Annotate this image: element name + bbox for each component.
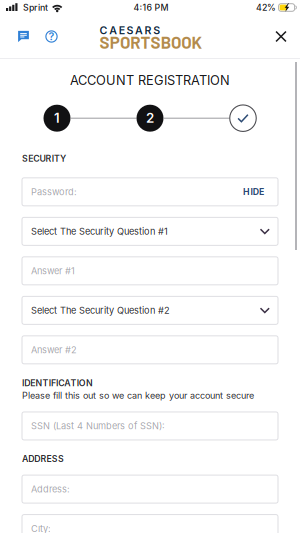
staticText: IDENTIFICATION xyxy=(22,378,93,388)
button[interactable]: Messages xyxy=(9,21,37,51)
staticText: 2 xyxy=(146,110,154,126)
button[interactable]: City: xyxy=(22,515,278,533)
staticText: City: xyxy=(31,523,51,533)
staticText: SSN (Last 4 Numbers of SSN): xyxy=(31,420,165,431)
staticText: Password: xyxy=(31,186,77,197)
staticText: 1 xyxy=(54,110,60,126)
staticText: Select The Security Question #1 xyxy=(31,226,168,237)
staticText: SECURITY xyxy=(22,153,66,164)
staticText: Address: xyxy=(31,483,70,495)
staticText: 4:16 PM xyxy=(133,2,168,13)
staticText: Sprint xyxy=(23,2,48,13)
button[interactable]: Close xyxy=(266,21,296,51)
staticText: ACCOUNT REGISTRATION xyxy=(70,73,230,88)
staticText: SPORTSBOOK xyxy=(100,32,202,52)
staticText: Please fill this out so we can keep your… xyxy=(22,390,254,401)
staticText: CAESARS xyxy=(100,24,160,37)
staticText: Answer #2 xyxy=(31,344,77,355)
staticText: 42% xyxy=(256,2,276,13)
button[interactable]: Select The Security Question #2 xyxy=(22,296,278,324)
staticText: ADDRESS xyxy=(22,453,64,464)
staticText: Select The Security Question #2 xyxy=(31,305,170,316)
button[interactable]: HIDE xyxy=(235,180,264,203)
button[interactable]: Help xyxy=(37,21,65,51)
button[interactable]: Answer #1 xyxy=(22,257,278,285)
button[interactable]: Select The Security Question #1 xyxy=(22,217,278,245)
button[interactable]: Address: xyxy=(22,475,278,503)
button[interactable]: SSN (Last 4 Numbers of SSN): xyxy=(22,412,278,440)
staticText: ? xyxy=(48,30,54,43)
staticText: Answer #1 xyxy=(31,265,75,276)
staticText: HIDE xyxy=(243,186,264,197)
button[interactable]: Answer #2 xyxy=(22,336,278,364)
